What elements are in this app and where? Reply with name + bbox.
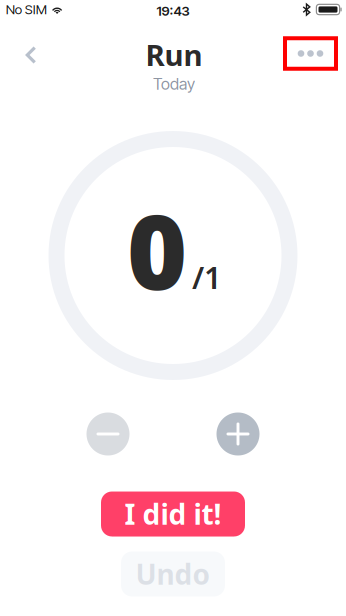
- button[interactable]: Increase: [216, 412, 259, 455]
- button[interactable]: Back: [9, 33, 53, 77]
- staticText: /1: [192, 257, 222, 297]
- staticText: 0: [127, 182, 187, 318]
- staticText: Undo: [135, 555, 210, 593]
- staticText: Run: [145, 35, 202, 74]
- button[interactable]: Undo: [121, 551, 225, 596]
- staticText: Today: [153, 74, 195, 94]
- staticText: I did it!: [124, 495, 221, 533]
- button[interactable]: Decrease: [86, 412, 129, 455]
- staticText: 19:43: [156, 3, 189, 19]
- button[interactable]: More options: [283, 36, 338, 71]
- button[interactable]: I did it!: [101, 491, 245, 536]
- staticText: No SIM: [6, 1, 47, 17]
